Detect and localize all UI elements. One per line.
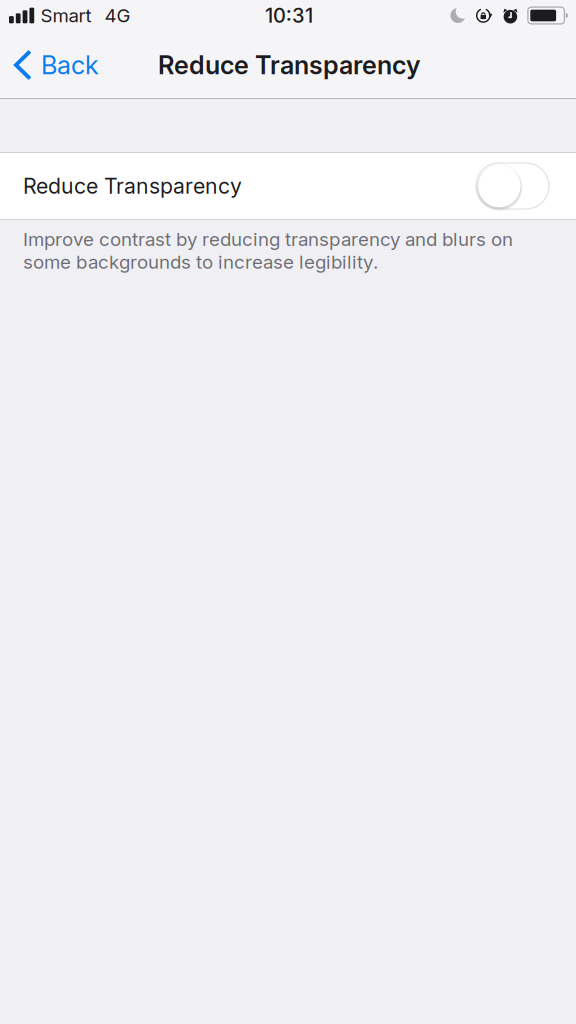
staticText: 4G bbox=[104, 4, 130, 27]
staticText: Smart bbox=[40, 4, 91, 27]
button[interactable]: Reduce Transparency bbox=[0, 152, 576, 220]
staticText: 10:31 bbox=[265, 3, 313, 28]
staticText: Back bbox=[41, 50, 99, 80]
button[interactable]: Back bbox=[0, 43, 109, 86]
staticText: Reduce Transparency bbox=[158, 50, 421, 80]
staticText: Improve contrast by reducing transparenc… bbox=[23, 228, 513, 273]
staticText: Reduce Transparency bbox=[23, 173, 242, 199]
button[interactable]: Reduce Transparency, off bbox=[476, 163, 549, 209]
